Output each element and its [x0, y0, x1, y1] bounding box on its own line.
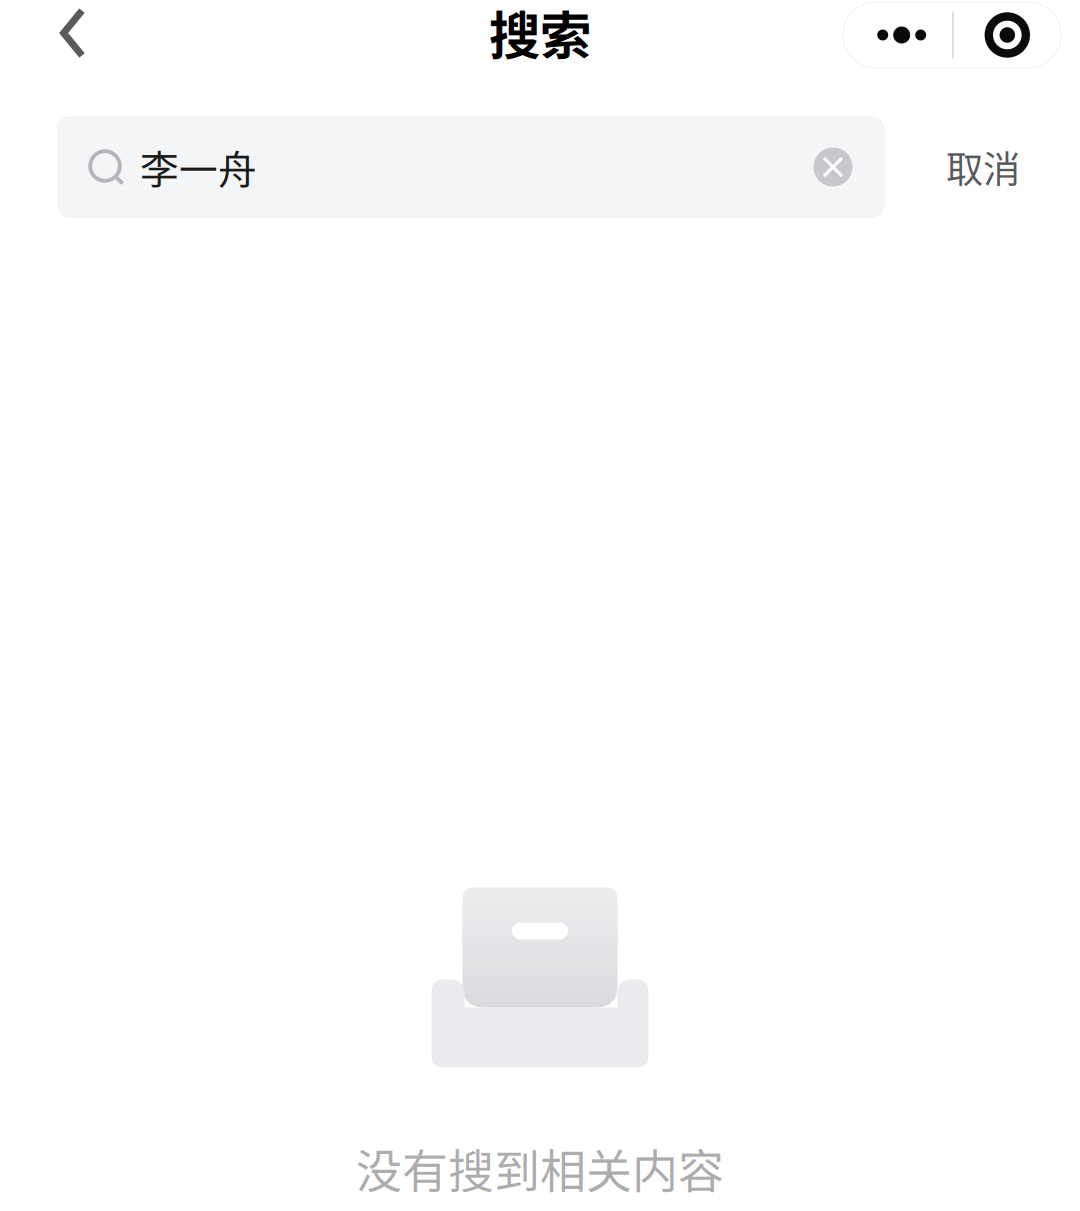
button[interactable]: More options: [843, 2, 952, 68]
button[interactable]: Close mini program: [954, 2, 1061, 68]
button[interactable]: Back: [23, 0, 123, 70]
staticText: 取消: [946, 140, 1020, 194]
staticText: 没有搜到相关内容: [356, 1134, 724, 1201]
staticText: 搜索: [489, 0, 591, 69]
button[interactable]: 取消: [905, 116, 1061, 218]
button[interactable]: 李一舟: [57, 116, 885, 218]
staticText: 李一舟: [140, 139, 257, 195]
button[interactable]: Clear search text: [797, 116, 869, 218]
